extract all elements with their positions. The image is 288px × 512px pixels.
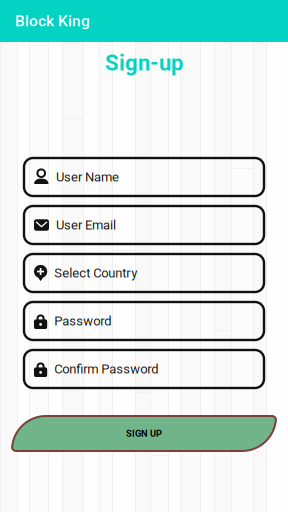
button[interactable]: Select Country [24, 254, 264, 292]
button[interactable]: User Email [24, 206, 264, 244]
staticText: Password [54, 313, 111, 329]
staticText: Select Country [54, 265, 137, 281]
button[interactable]: Password [24, 302, 264, 340]
staticText: SIGN UP [126, 428, 162, 439]
button[interactable]: User Name [24, 158, 264, 196]
staticText: Confirm Password [54, 361, 158, 377]
staticText: User Name [56, 169, 119, 185]
button[interactable]: Confirm Password [24, 350, 264, 388]
staticText: Sign-up [105, 50, 183, 76]
staticText: Block King [15, 12, 90, 30]
staticText: User Email [56, 217, 116, 233]
button[interactable]: SIGN UP [12, 416, 276, 451]
